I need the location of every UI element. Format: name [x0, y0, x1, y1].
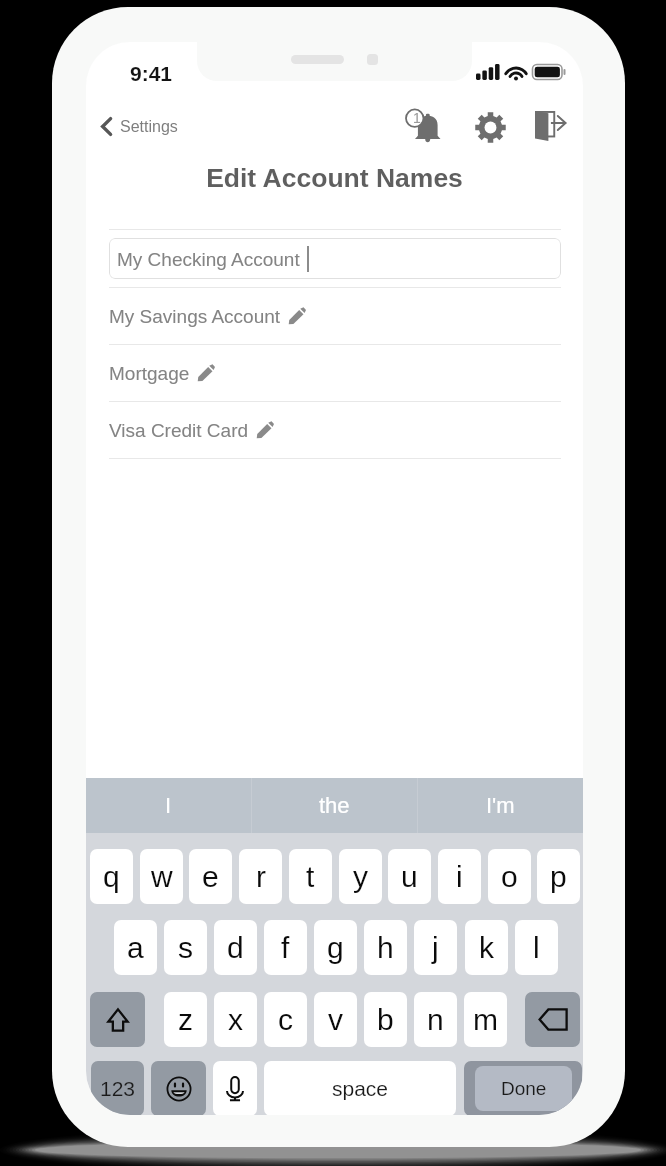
staticText: 123 [100, 1077, 136, 1100]
button[interactable]: Backspace [525, 992, 580, 1047]
staticText: t [306, 860, 315, 894]
button[interactable]: i [438, 849, 481, 904]
button[interactable]: c [264, 992, 307, 1047]
staticText: a [127, 931, 144, 965]
button[interactable]: Done [464, 1061, 582, 1115]
staticText: space [332, 1077, 389, 1100]
staticText: d [227, 931, 244, 965]
button[interactable]: s [164, 920, 207, 975]
staticText: m [473, 1003, 498, 1037]
button[interactable]: w [140, 849, 183, 904]
staticText: u [401, 860, 418, 894]
button[interactable]: a [114, 920, 157, 975]
button[interactable]: Notifications [402, 108, 448, 154]
staticText: q [103, 860, 120, 894]
staticText: y [353, 860, 368, 894]
button[interactable]: Settings [101, 108, 178, 145]
staticText: the [319, 793, 350, 818]
button[interactable]: Emoji [151, 1061, 206, 1115]
staticText: k [479, 931, 494, 965]
staticText: I [165, 793, 172, 818]
button[interactable]: y [339, 849, 382, 904]
button[interactable]: I [86, 778, 251, 833]
staticText: I'm [486, 793, 515, 818]
staticText: c [278, 1003, 293, 1037]
staticText: x [228, 1003, 243, 1037]
staticText: Done [501, 1078, 547, 1099]
staticText: 1 [413, 110, 421, 125]
staticText: n [427, 1003, 444, 1037]
staticText: v [328, 1003, 343, 1037]
button[interactable]: x [214, 992, 257, 1047]
staticText: i [456, 860, 463, 894]
button[interactable]: p [537, 849, 580, 904]
staticText: Settings [120, 118, 178, 136]
button[interactable]: b [364, 992, 407, 1047]
button[interactable]: k [465, 920, 508, 975]
staticText: z [178, 1003, 193, 1037]
staticText: Mortgage [109, 363, 190, 384]
staticText: g [327, 931, 344, 965]
button[interactable]: the [252, 778, 417, 833]
button[interactable]: o [488, 849, 531, 904]
button[interactable]: r [239, 849, 282, 904]
button[interactable]: 123 [91, 1061, 144, 1115]
staticText: j [432, 931, 439, 965]
button[interactable]: My Savings Account [109, 288, 561, 344]
button[interactable]: j [414, 920, 457, 975]
staticText: 9:41 [130, 62, 173, 85]
staticText: p [550, 860, 567, 894]
button[interactable]: Mortgage [109, 345, 561, 401]
staticText: r [256, 860, 266, 894]
button[interactable]: My Checking Account [109, 238, 561, 279]
staticText: o [501, 860, 518, 894]
button[interactable]: space [264, 1061, 456, 1115]
button[interactable]: g [314, 920, 357, 975]
button[interactable]: u [388, 849, 431, 904]
button[interactable]: l [515, 920, 558, 975]
button[interactable]: m [464, 992, 507, 1047]
staticText: My Checking Account [117, 249, 300, 270]
staticText: Visa Credit Card [109, 420, 249, 441]
staticText: w [151, 860, 173, 894]
button[interactable]: n [414, 992, 457, 1047]
button[interactable]: v [314, 992, 357, 1047]
button[interactable]: Visa Credit Card [109, 402, 561, 458]
button[interactable]: Settings [467, 104, 513, 150]
button[interactable]: h [364, 920, 407, 975]
staticText: s [178, 931, 193, 965]
staticText: My Savings Account [109, 306, 281, 327]
button[interactable]: z [164, 992, 207, 1047]
staticText: b [377, 1003, 394, 1037]
button[interactable]: f [264, 920, 307, 975]
staticText: h [377, 931, 394, 965]
staticText: e [202, 860, 219, 894]
staticText: Edit Account Names [86, 163, 583, 193]
staticText: l [533, 931, 540, 965]
button[interactable]: Log out [528, 104, 574, 150]
button[interactable]: Shift [90, 992, 145, 1047]
button[interactable]: q [90, 849, 133, 904]
staticText: f [281, 931, 290, 965]
button[interactable]: Dictation [213, 1061, 257, 1115]
button[interactable]: t [289, 849, 332, 904]
button[interactable]: I'm [418, 778, 583, 833]
button[interactable]: e [189, 849, 232, 904]
button[interactable]: d [214, 920, 257, 975]
